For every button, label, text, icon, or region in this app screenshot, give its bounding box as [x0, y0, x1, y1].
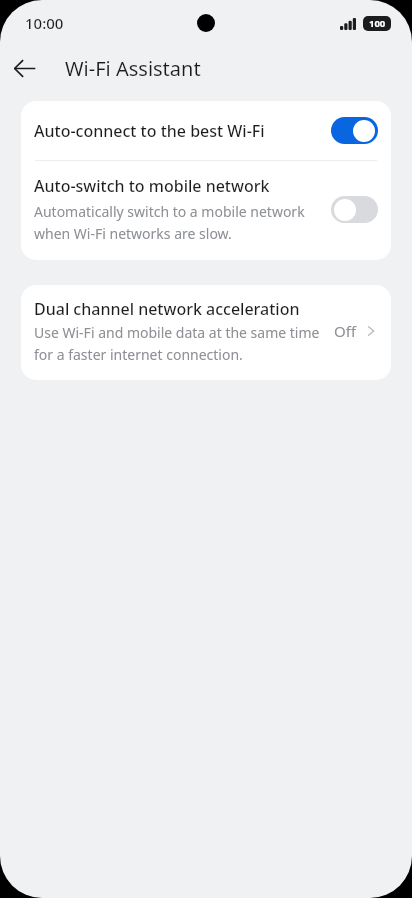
staticText: Wi-Fi Assistant [65, 55, 201, 82]
button[interactable]: Back [0, 46, 48, 90]
staticText: Auto-connect to the best Wi-Fi [34, 120, 331, 142]
button[interactable]: Auto-switch to mobile network [21, 161, 391, 260]
staticText: 100 [369, 17, 386, 30]
staticText: Automatically switch to a mobile network… [34, 202, 317, 243]
staticText: Use Wi-Fi and mobile data at the same ti… [34, 323, 326, 364]
button[interactable]: Auto-connect to the best Wi-Fi [21, 101, 391, 160]
button[interactable]: Dual channel network acceleration [21, 285, 391, 380]
staticText: 10:00 [25, 13, 64, 33]
staticText: Off [334, 321, 357, 341]
staticText: Dual channel network acceleration [34, 298, 300, 320]
button[interactable]: Switch on [331, 117, 378, 144]
staticText: Auto-switch to mobile network [34, 175, 270, 197]
button[interactable]: Switch off [331, 196, 378, 223]
